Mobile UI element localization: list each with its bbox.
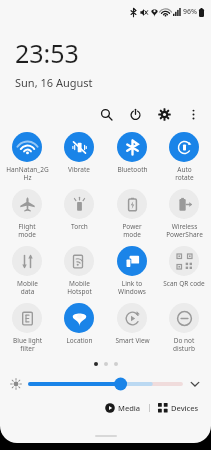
- staticText: Do not disturb: [173, 336, 195, 353]
- button[interactable]: Scan QR code: [159, 244, 209, 290]
- button[interactable]: Flight mode: [2, 187, 52, 241]
- button[interactable]: Power mode: [107, 187, 157, 241]
- staticText: Auto rotate: [175, 165, 194, 182]
- button[interactable]: Location: [54, 301, 104, 347]
- staticText: Media: [118, 403, 141, 413]
- button[interactable]: Torch: [54, 187, 104, 233]
- button[interactable]: More options: [183, 104, 203, 124]
- staticText: Bluetooth: [117, 165, 148, 174]
- staticText: HanNatan_2G Hz: [6, 165, 49, 182]
- staticText: Scan QR code: [163, 279, 205, 288]
- button[interactable]: Expand brightness settings: [187, 376, 203, 392]
- staticText: Power mode: [122, 222, 142, 239]
- staticText: Blue light filter: [13, 336, 42, 353]
- button[interactable]: Auto rotate: [159, 130, 209, 184]
- button[interactable]: Vibrate: [54, 130, 104, 176]
- button[interactable]: Devices: [154, 401, 203, 415]
- staticText: Link to Windows: [118, 279, 146, 296]
- button[interactable]: Bluetooth: [107, 130, 157, 176]
- button[interactable]: Brightness: [8, 376, 24, 392]
- button[interactable]: Media: [101, 401, 145, 415]
- staticText: 23:53: [15, 36, 79, 70]
- button[interactable]: Mobile data: [2, 244, 52, 298]
- staticText: Torch: [71, 222, 88, 231]
- button[interactable]: Wireless PowerShare: [159, 187, 209, 241]
- staticText: 96%: [183, 7, 197, 17]
- staticText: Location: [66, 336, 93, 345]
- button[interactable]: Power: [125, 104, 145, 124]
- button[interactable]: Brightness slider: [30, 375, 181, 393]
- staticText: Flight mode: [18, 222, 36, 239]
- button[interactable]: Settings: [154, 104, 174, 124]
- button[interactable]: Do not disturb: [159, 301, 209, 355]
- staticText: Smart View: [115, 336, 150, 345]
- staticText: Devices: [171, 403, 199, 413]
- button[interactable]: Search: [96, 104, 116, 124]
- button[interactable]: Mobile Hotspot: [54, 244, 104, 298]
- staticText: Sun, 16 August: [15, 75, 93, 90]
- button[interactable]: HanNatan_2G Hz: [2, 130, 52, 184]
- staticText: Mobile Hotspot: [67, 279, 92, 296]
- button[interactable]: Link to Windows: [107, 244, 157, 298]
- staticText: Mobile data: [17, 279, 38, 296]
- button[interactable]: Blue light filter: [2, 301, 52, 355]
- button[interactable]: Smart View: [107, 301, 157, 347]
- staticText: Vibrate: [68, 165, 90, 174]
- staticText: Wireless PowerShare: [166, 222, 203, 239]
